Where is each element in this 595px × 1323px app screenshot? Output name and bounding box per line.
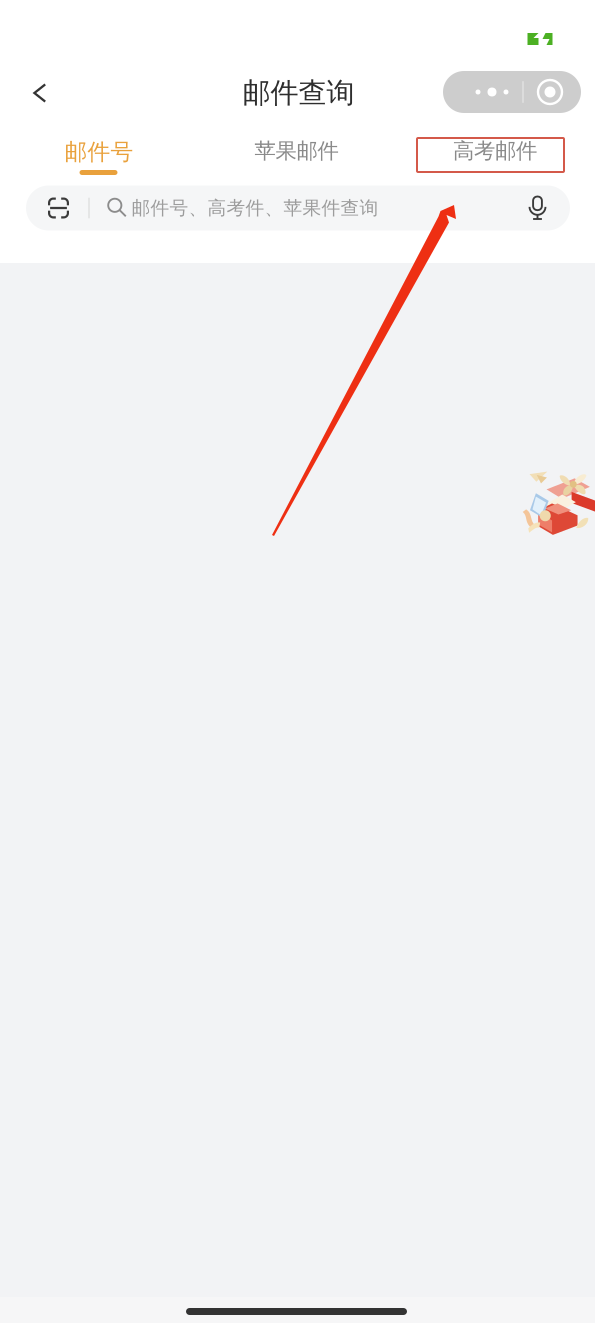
button[interactable]: 邮件号	[29, 125, 169, 177]
staticText: 邮件号	[64, 138, 133, 166]
button[interactable]: 苹果邮件	[201, 123, 391, 179]
staticText: 苹果邮件	[254, 138, 338, 164]
staticText: 高考邮件	[453, 138, 537, 164]
button[interactable]: 更多	[443, 71, 581, 113]
staticText: 邮件查询	[242, 76, 354, 110]
button[interactable]: 语音搜索	[517, 185, 557, 230]
staticText: 邮件号、高考件、苹果件查询	[131, 196, 378, 219]
button[interactable]: 高考邮件	[421, 131, 568, 171]
button[interactable]: 扫一扫	[35, 185, 81, 230]
button[interactable]: 返回	[14, 69, 66, 117]
